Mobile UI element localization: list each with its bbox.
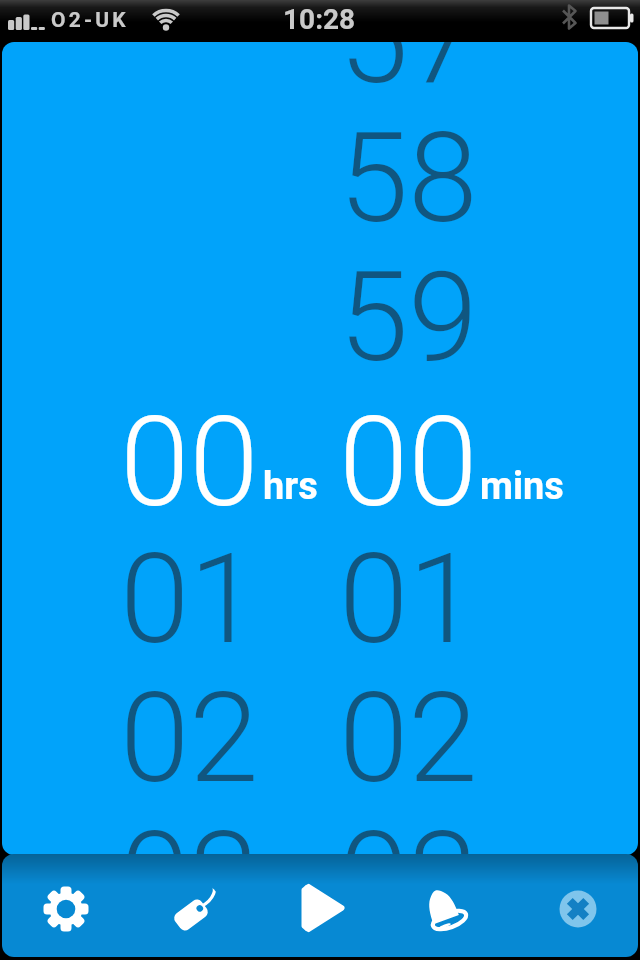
staticText: 57 bbox=[339, 42, 478, 112]
staticText: 02 bbox=[339, 665, 478, 811]
button[interactable] bbox=[166, 881, 222, 937]
button[interactable] bbox=[102, 42, 322, 855]
staticText: O2-UK bbox=[51, 8, 129, 33]
button[interactable] bbox=[38, 881, 94, 937]
staticText: hrs bbox=[263, 464, 318, 509]
button[interactable] bbox=[550, 881, 606, 937]
staticText: mins bbox=[480, 464, 564, 509]
staticText: 01 bbox=[120, 526, 259, 672]
staticText: 02 bbox=[120, 665, 259, 811]
staticText: 03 bbox=[120, 804, 259, 855]
button[interactable] bbox=[322, 42, 567, 855]
staticText: 03 bbox=[339, 804, 478, 855]
staticText: 59 bbox=[339, 244, 478, 390]
button[interactable] bbox=[294, 880, 350, 936]
staticText: 10:28 bbox=[283, 3, 356, 36]
staticText: 58 bbox=[339, 105, 478, 251]
button[interactable] bbox=[422, 880, 478, 936]
staticText: 01 bbox=[339, 526, 478, 672]
staticText: 00 bbox=[120, 389, 259, 535]
staticText: 00 bbox=[339, 389, 478, 535]
